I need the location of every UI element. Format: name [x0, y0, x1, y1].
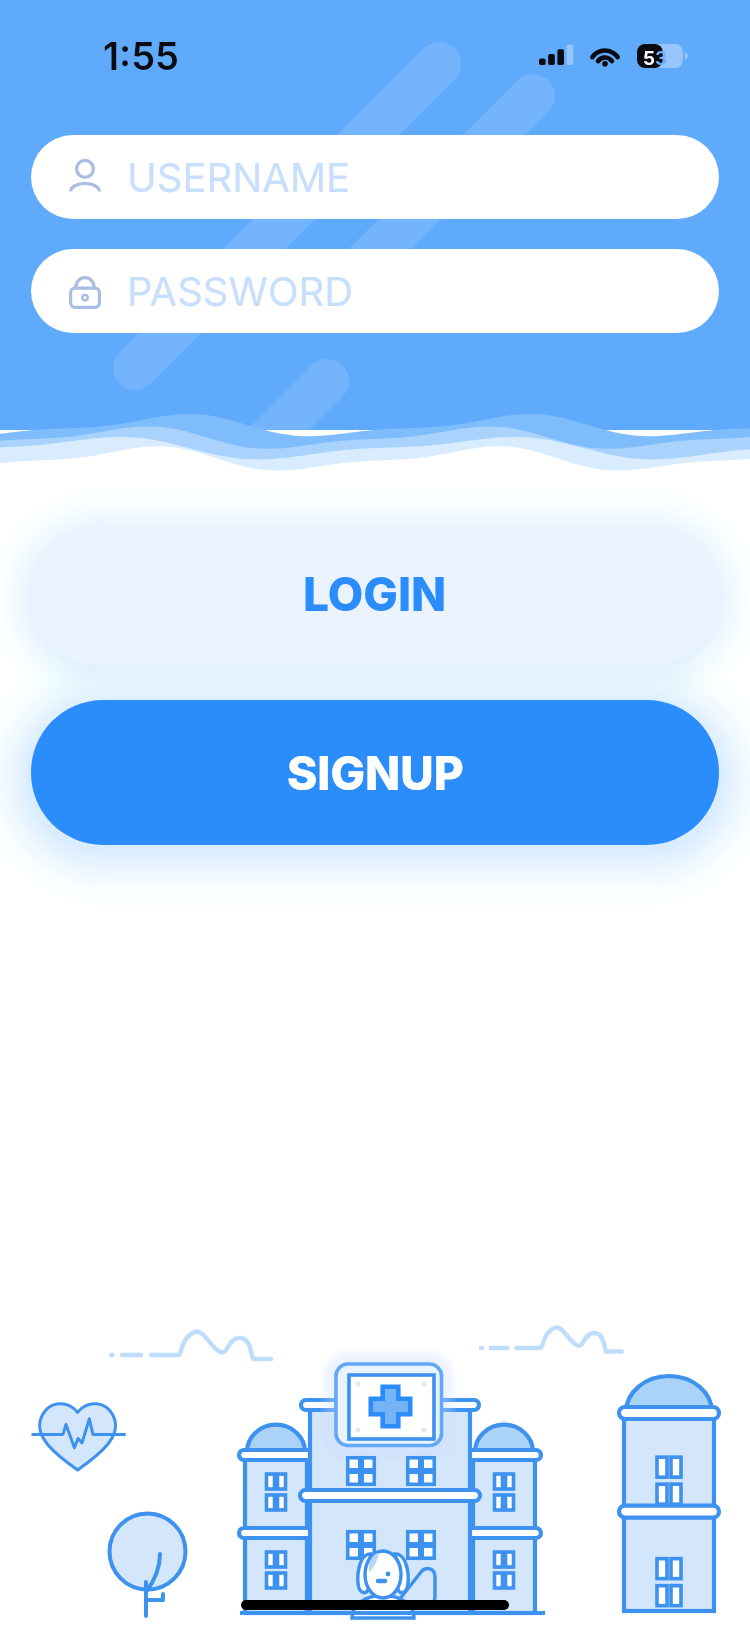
staticText: LOGIN	[303, 566, 447, 622]
staticText: 5	[643, 47, 655, 70]
staticText: 1:55	[103, 33, 179, 79]
staticText: PASSWORD	[127, 267, 354, 315]
staticText: USERNAME	[127, 153, 351, 201]
button[interactable]: SIGNUP	[31, 700, 719, 845]
button[interactable]: LOGIN	[31, 523, 719, 665]
button[interactable]: PASSWORD	[31, 249, 719, 333]
staticText: 3	[655, 47, 668, 70]
staticText: SIGNUP	[287, 745, 464, 801]
button[interactable]: USERNAME	[31, 135, 719, 219]
